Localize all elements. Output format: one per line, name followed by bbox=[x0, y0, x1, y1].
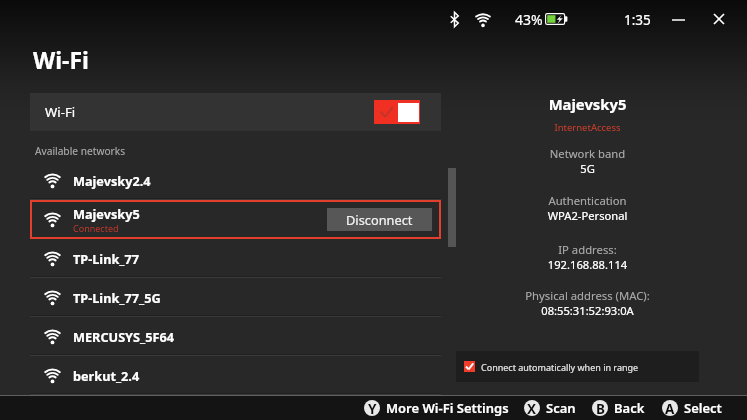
staticText: WPA2-Personal bbox=[467, 208, 708, 223]
button[interactable]: Close bbox=[705, 5, 733, 33]
button[interactable]: Minimize bbox=[664, 6, 692, 34]
button[interactable]: TP-Link_77_5G bbox=[30, 278, 441, 317]
staticText: TP-Link_77 bbox=[73, 250, 139, 267]
staticText: 08:55:31:52:93:0A bbox=[467, 303, 708, 318]
button[interactable]: B bbox=[592, 399, 645, 417]
staticText: Physical address (MAC): bbox=[467, 288, 708, 303]
staticText: berkut_2.4 bbox=[73, 367, 140, 384]
staticText: Authentication bbox=[467, 193, 708, 208]
button[interactable]: A bbox=[662, 399, 722, 417]
button[interactable]: Bluetooth bbox=[445, 10, 463, 28]
button[interactable]: Disconnect bbox=[327, 208, 432, 231]
staticText: A bbox=[665, 400, 675, 416]
staticText: 192.168.88.114 bbox=[467, 257, 708, 272]
staticText: 5G bbox=[467, 161, 708, 176]
staticText: InternetAccess bbox=[467, 121, 708, 134]
staticText: Scan bbox=[546, 399, 576, 417]
button[interactable]: TP-Link_77 bbox=[30, 239, 441, 278]
staticText: MERCUSYS_5F64 bbox=[73, 328, 175, 345]
staticText: Select bbox=[684, 399, 722, 417]
staticText: More Wi-Fi Settings bbox=[386, 399, 509, 417]
button[interactable]: Wi-Fi bbox=[30, 93, 441, 131]
staticText: 1:35 bbox=[624, 11, 651, 29]
staticText: X bbox=[527, 400, 537, 416]
button[interactable]: Y bbox=[364, 399, 509, 417]
staticText: Connect automatically when in range bbox=[481, 361, 639, 373]
button[interactable] bbox=[30, 395, 441, 420]
button[interactable]: Majevsky5 bbox=[30, 200, 441, 239]
staticText: Majevsky5 bbox=[73, 205, 140, 222]
staticText: Back bbox=[614, 399, 645, 417]
staticText: Disconnect bbox=[346, 211, 413, 228]
staticText: Y bbox=[368, 400, 377, 416]
button[interactable]: MERCUSYS_5F64 bbox=[30, 317, 441, 356]
staticText: Network band bbox=[467, 146, 708, 161]
staticText: Majevsky5 bbox=[467, 94, 708, 114]
button[interactable]: Majevsky2.4 bbox=[30, 161, 441, 200]
staticText: B bbox=[596, 400, 605, 416]
button[interactable]: berkut_2.4 bbox=[30, 356, 441, 395]
staticText: IP address: bbox=[467, 242, 708, 257]
staticText: Majevsky2.4 bbox=[73, 172, 151, 189]
button[interactable]: Wi-Fi status bbox=[473, 9, 493, 29]
staticText: Wi-Fi bbox=[33, 44, 89, 75]
button[interactable]: X bbox=[524, 399, 576, 417]
staticText: TP-Link_77_5G bbox=[73, 289, 161, 306]
button[interactable]: Connect automatically when in range bbox=[456, 351, 699, 382]
staticText: Available networks bbox=[35, 144, 126, 158]
staticText: Wi-Fi bbox=[45, 103, 76, 121]
staticText: 43% bbox=[515, 10, 543, 29]
staticText: Connected bbox=[73, 222, 119, 234]
